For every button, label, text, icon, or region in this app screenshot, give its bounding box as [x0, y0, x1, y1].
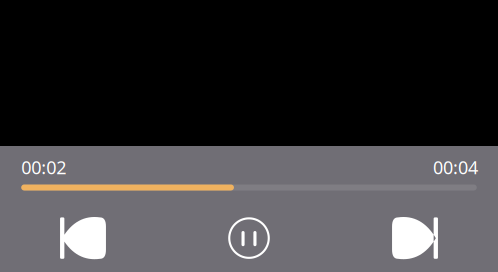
- staticText: 00:02: [21, 155, 66, 179]
- button[interactable]: Pause: [166, 208, 332, 268]
- button[interactable]: Previous track: [0, 208, 166, 268]
- staticText: 00:04: [433, 155, 478, 179]
- button[interactable]: Next track: [332, 208, 498, 268]
- button[interactable]: Seek: [21, 184, 477, 190]
